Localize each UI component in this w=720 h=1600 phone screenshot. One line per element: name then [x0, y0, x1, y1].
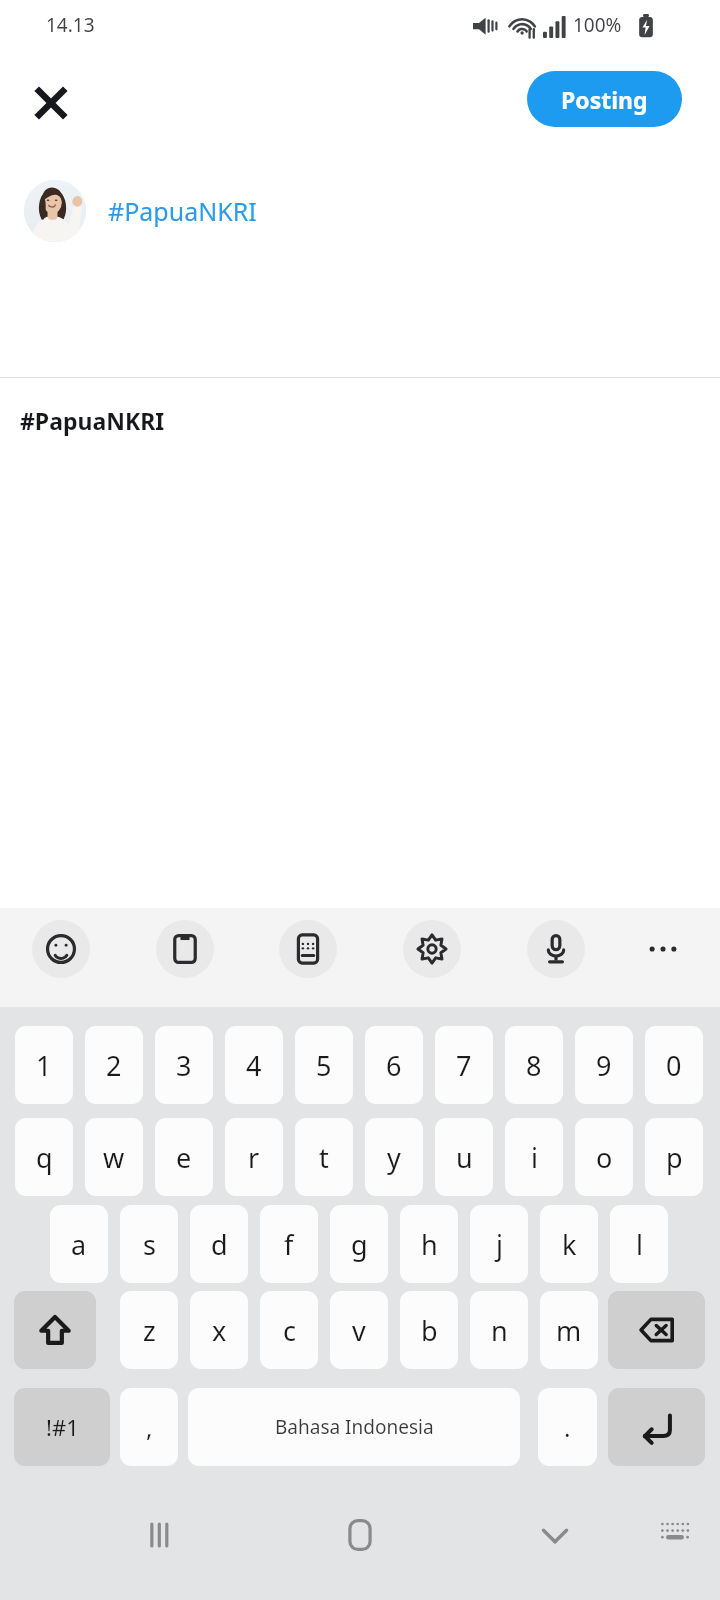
button[interactable]: i: [505, 1118, 563, 1196]
staticText: z: [143, 1312, 156, 1349]
staticText: 0: [666, 1047, 682, 1084]
button[interactable]: 2: [85, 1026, 143, 1104]
staticText: 7: [456, 1047, 472, 1084]
staticText: 6: [386, 1047, 402, 1084]
staticText: 5: [316, 1047, 332, 1084]
button[interactable]: 8: [505, 1026, 563, 1104]
button[interactable]: c: [260, 1291, 318, 1369]
button[interactable]: 1: [15, 1026, 73, 1104]
button[interactable]: 6: [365, 1026, 423, 1104]
staticText: !#1: [46, 1412, 79, 1442]
button[interactable]: Enter: [608, 1388, 705, 1466]
staticText: #PapuaNKRI: [108, 194, 257, 228]
button[interactable]: p: [645, 1118, 703, 1196]
staticText: t: [319, 1139, 329, 1176]
staticText: 14.13: [46, 12, 95, 38]
button[interactable]: m: [540, 1291, 598, 1369]
staticText: c: [283, 1312, 296, 1349]
button[interactable]: v: [330, 1291, 388, 1369]
staticText: 8: [526, 1047, 542, 1084]
button[interactable]: Shift: [14, 1291, 96, 1369]
button[interactable]: d: [190, 1205, 248, 1283]
button[interactable]: u: [435, 1118, 493, 1196]
staticText: d: [211, 1226, 228, 1263]
button[interactable]: k: [540, 1205, 598, 1283]
button[interactable]: s: [120, 1205, 178, 1283]
button[interactable]: ,: [120, 1388, 178, 1466]
staticText: a: [71, 1226, 87, 1263]
button[interactable]: 3: [155, 1026, 213, 1104]
button[interactable]: Bahasa Indonesia: [188, 1388, 520, 1466]
staticText: Posting: [561, 84, 648, 115]
staticText: ,: [146, 1411, 153, 1444]
button[interactable]: y: [365, 1118, 423, 1196]
staticText: x: [212, 1312, 227, 1349]
button[interactable]: Posting: [527, 71, 682, 127]
button[interactable]: 7: [435, 1026, 493, 1104]
button[interactable]: Backspace: [608, 1291, 705, 1369]
button[interactable]: 9: [575, 1026, 633, 1104]
staticText: l: [636, 1226, 643, 1263]
staticText: o: [596, 1139, 613, 1176]
staticText: i: [531, 1139, 538, 1176]
staticText: n: [491, 1312, 508, 1349]
button[interactable]: Home: [320, 1495, 400, 1575]
button[interactable]: x: [190, 1291, 248, 1369]
button[interactable]: n: [470, 1291, 528, 1369]
staticText: 4: [246, 1047, 262, 1084]
staticText: j: [496, 1226, 503, 1263]
staticText: #PapuaNKRI: [20, 405, 165, 436]
button[interactable]: q: [15, 1118, 73, 1196]
button[interactable]: Clipboard: [156, 920, 214, 978]
staticText: 9: [596, 1047, 612, 1084]
button[interactable]: Close: [16, 68, 86, 138]
staticText: h: [421, 1226, 438, 1263]
staticText: g: [351, 1226, 368, 1263]
button[interactable]: !#1: [14, 1388, 110, 1466]
staticText: b: [421, 1312, 438, 1349]
button[interactable]: h: [400, 1205, 458, 1283]
staticText: k: [562, 1226, 577, 1263]
staticText: f: [284, 1226, 294, 1263]
button[interactable]: 4: [225, 1026, 283, 1104]
staticText: r: [248, 1139, 260, 1176]
button[interactable]: o: [575, 1118, 633, 1196]
staticText: s: [143, 1226, 156, 1263]
button[interactable]: r: [225, 1118, 283, 1196]
staticText: .: [564, 1411, 571, 1444]
staticText: w: [103, 1139, 125, 1176]
button[interactable]: Voice input: [527, 920, 585, 978]
staticText: 100%: [573, 12, 622, 38]
button[interactable]: j: [470, 1205, 528, 1283]
button[interactable]: f: [260, 1205, 318, 1283]
button[interactable]: Change keyboard: [640, 1495, 710, 1565]
staticText: e: [176, 1139, 192, 1176]
button[interactable]: Settings: [403, 920, 461, 978]
button[interactable]: z: [120, 1291, 178, 1369]
button[interactable]: t: [295, 1118, 353, 1196]
button[interactable]: 0: [645, 1026, 703, 1104]
staticText: q: [36, 1139, 53, 1176]
button[interactable]: e: [155, 1118, 213, 1196]
button[interactable]: 5: [295, 1026, 353, 1104]
button[interactable]: Recents: [120, 1495, 200, 1575]
button[interactable]: Hide keyboard: [515, 1495, 595, 1575]
staticText: 3: [176, 1047, 192, 1084]
button[interactable]: #PapuaNKRI: [0, 166, 720, 256]
staticText: m: [556, 1312, 582, 1349]
button[interactable]: w: [85, 1118, 143, 1196]
button[interactable]: a: [50, 1205, 108, 1283]
button[interactable]: .: [538, 1388, 597, 1466]
staticText: y: [387, 1139, 401, 1176]
button[interactable]: Keyboard modes: [279, 920, 337, 978]
staticText: 1: [36, 1047, 52, 1084]
staticText: 2: [106, 1047, 122, 1084]
staticText: p: [666, 1139, 683, 1176]
button[interactable]: More options: [634, 920, 692, 978]
staticText: v: [352, 1312, 366, 1349]
staticText: Bahasa Indonesia: [275, 1414, 434, 1440]
button[interactable]: l: [610, 1205, 668, 1283]
button[interactable]: b: [400, 1291, 458, 1369]
button[interactable]: g: [330, 1205, 388, 1283]
button[interactable]: Emoji: [32, 920, 90, 978]
